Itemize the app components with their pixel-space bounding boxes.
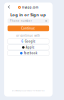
button[interactable]: G bbox=[8, 39, 49, 44]
staticText: Facebook bbox=[24, 51, 37, 55]
button[interactable]: Continue bbox=[8, 25, 49, 31]
staticText: Log in or Sign up bbox=[10, 12, 46, 17]
staticText: Continue bbox=[21, 27, 35, 30]
button[interactable]: Back bbox=[6, 4, 12, 10]
staticText: myapp.com bbox=[22, 6, 39, 9]
staticText: G bbox=[21, 40, 23, 43]
button[interactable]: Facebook bbox=[8, 51, 49, 56]
button[interactable]: Apple bbox=[8, 45, 49, 50]
staticText: or continue with bbox=[16, 34, 40, 37]
staticText: Phone number bbox=[10, 19, 32, 23]
staticText: Apple bbox=[26, 46, 35, 49]
staticText: By continuing, you agree to our Terms of… bbox=[12, 90, 45, 92]
staticText: Google bbox=[25, 40, 36, 43]
